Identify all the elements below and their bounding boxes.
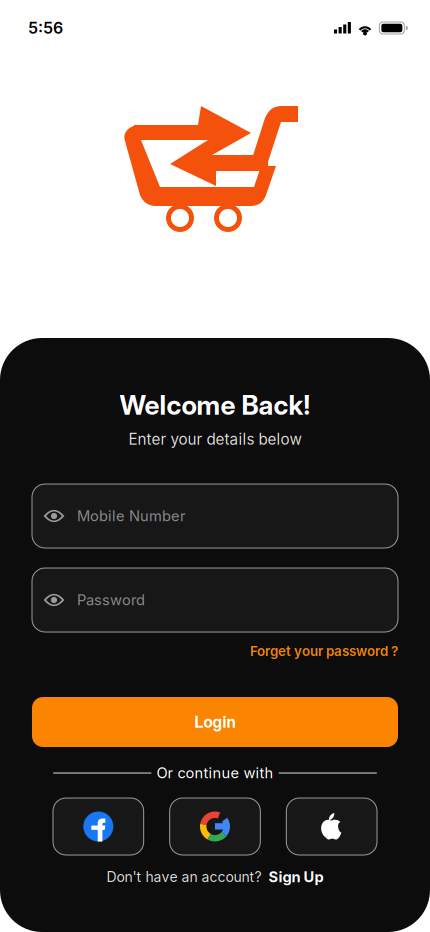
button[interactable]: Continue with Google (170, 798, 260, 855)
button[interactable]: Password (32, 568, 398, 632)
staticText: Forget your password ? (250, 643, 398, 659)
button[interactable]: Continue with Apple (286, 798, 377, 855)
staticText: Enter your details below (128, 430, 301, 448)
staticText: Welcome Back! (119, 389, 310, 421)
staticText: Sign Up (268, 868, 323, 886)
staticText: Or continue with (156, 764, 273, 782)
staticText: Password (77, 591, 145, 609)
button[interactable]: Sign Up (268, 868, 323, 886)
staticText: 5:56 (28, 18, 63, 38)
staticText: Mobile Number (77, 507, 186, 525)
staticText: Login (194, 712, 235, 732)
staticText: Don't have an account? (106, 868, 261, 885)
button[interactable]: Forget your password ? (32, 643, 398, 659)
button[interactable]: Continue with Facebook (53, 798, 144, 855)
button[interactable]: Login (32, 697, 398, 747)
button[interactable]: Mobile Number (32, 484, 398, 548)
